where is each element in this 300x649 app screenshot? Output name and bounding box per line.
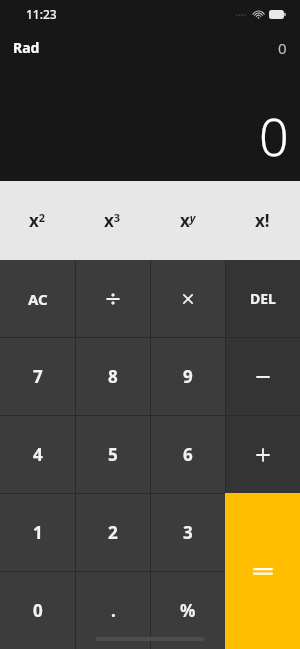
staticText: 1: [33, 521, 43, 544]
staticText: 6: [183, 443, 193, 466]
staticText: 9: [183, 365, 193, 388]
staticText: 0: [259, 100, 289, 171]
button[interactable]: xy: [150, 181, 225, 260]
button[interactable]: 4: [0, 416, 75, 493]
button[interactable]: x3: [75, 181, 150, 260]
staticText: DEL: [250, 289, 276, 308]
button[interactable]: Rad: [13, 38, 40, 57]
button[interactable]: Plus: [226, 416, 300, 493]
staticText: 2: [108, 521, 118, 544]
staticText: x2: [29, 209, 46, 232]
staticText: %: [180, 599, 196, 622]
button[interactable]: 0: [0, 572, 75, 649]
button[interactable]: x2: [0, 181, 75, 260]
button[interactable]: Multiply: [151, 260, 225, 337]
button[interactable]: 3: [151, 494, 225, 571]
staticText: xy: [180, 209, 196, 232]
button[interactable]: 2: [76, 494, 150, 571]
button[interactable]: 9: [151, 338, 225, 415]
button[interactable]: x!: [225, 181, 300, 260]
button[interactable]: DEL: [226, 260, 300, 337]
staticText: 4: [33, 443, 43, 466]
staticText: AC: [28, 289, 48, 309]
staticText: x3: [104, 209, 121, 232]
button[interactable]: 6: [151, 416, 225, 493]
button[interactable]: %: [151, 572, 225, 649]
staticText: 5: [108, 443, 118, 466]
staticText: 7: [33, 365, 43, 388]
staticText: 8: [108, 365, 118, 388]
button[interactable]: Equals: [225, 493, 300, 649]
staticText: .: [111, 599, 116, 622]
staticText: 0: [33, 599, 43, 622]
staticText: 0: [278, 38, 287, 58]
button[interactable]: 1: [0, 494, 75, 571]
button[interactable]: Divide: [76, 260, 150, 337]
button[interactable]: 5: [76, 416, 150, 493]
button[interactable]: .: [76, 572, 150, 649]
button[interactable]: Minus: [226, 338, 300, 415]
staticText: 3: [183, 521, 193, 544]
button[interactable]: 8: [76, 338, 150, 415]
staticText: x!: [255, 209, 270, 232]
button[interactable]: AC: [0, 260, 75, 337]
button[interactable]: 7: [0, 338, 75, 415]
staticText: 11:23: [26, 6, 57, 22]
